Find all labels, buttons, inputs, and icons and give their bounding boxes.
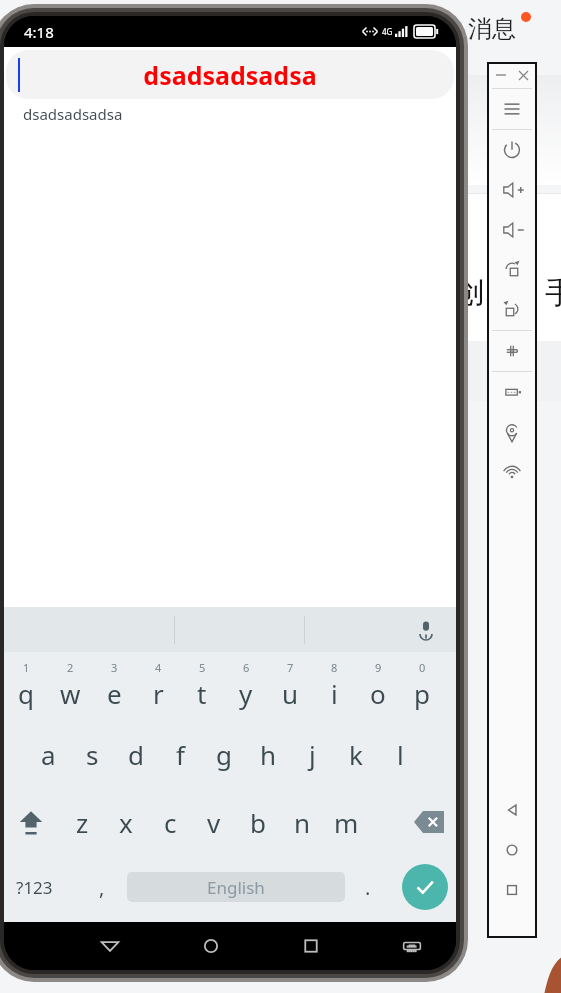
staticText: 手	[545, 274, 561, 312]
button[interactable]: d	[114, 720, 158, 788]
button[interactable]: dsadsadsadsa	[6, 50, 454, 99]
staticText: b	[250, 805, 266, 840]
button[interactable]: h	[246, 720, 290, 788]
button[interactable]: s	[70, 720, 114, 788]
button[interactable]: 1	[4, 652, 48, 720]
button[interactable]: k	[334, 720, 378, 788]
button[interactable]: g	[202, 720, 246, 788]
staticText: English	[207, 876, 265, 899]
staticText: 8	[331, 660, 338, 675]
button[interactable]: Home	[189, 924, 233, 968]
button[interactable]: 4	[136, 652, 180, 720]
button[interactable]: Menu	[487, 89, 537, 129]
staticText: y	[239, 676, 253, 711]
staticText: t	[197, 676, 207, 711]
button[interactable]: Shift	[4, 788, 58, 856]
staticText: 5	[199, 660, 206, 675]
staticText: h	[260, 737, 277, 772]
button[interactable]: .	[348, 856, 388, 918]
button[interactable]: Recents	[487, 870, 537, 910]
button[interactable]: Wi-Fi	[487, 452, 537, 492]
staticText: g	[216, 737, 232, 772]
button[interactable]: 6	[224, 652, 268, 720]
staticText: 4G	[382, 26, 393, 37]
staticText: 0	[419, 660, 426, 675]
button[interactable]: x	[104, 788, 148, 856]
staticText: r	[153, 676, 164, 711]
button[interactable]: Volume down	[487, 210, 537, 250]
staticText: ?123	[16, 876, 53, 899]
button[interactable]: 7	[268, 652, 312, 720]
button[interactable]: Recents	[289, 924, 333, 968]
staticText: dsadsadsadsa	[143, 58, 317, 92]
staticText: 创	[455, 274, 485, 312]
button[interactable]: Voice input	[410, 614, 442, 646]
button[interactable]: Back	[88, 924, 132, 968]
staticText: 4	[155, 660, 162, 675]
staticText: s	[86, 737, 99, 772]
staticText: 3	[111, 660, 118, 675]
staticText: q	[18, 676, 34, 711]
button[interactable]: b	[236, 788, 280, 856]
button[interactable]: 5	[180, 652, 224, 720]
button[interactable]: ?123	[4, 856, 64, 918]
staticText: k	[349, 737, 363, 772]
staticText: ,	[99, 874, 105, 901]
button[interactable]: Volume up	[487, 170, 537, 210]
staticText: 4:18	[24, 22, 54, 42]
button[interactable]: Battery	[487, 372, 537, 412]
button[interactable]: Back	[487, 790, 537, 830]
staticText: x	[119, 805, 133, 840]
staticText: l	[397, 737, 404, 772]
button[interactable]: Screenshot	[487, 331, 537, 371]
staticText: .	[365, 874, 371, 901]
button[interactable]: 8	[312, 652, 356, 720]
button[interactable]: z	[60, 788, 104, 856]
button[interactable]: j	[290, 720, 334, 788]
staticText: p	[414, 676, 430, 711]
staticText: 6	[243, 660, 250, 675]
button[interactable]: Backspace	[402, 788, 456, 856]
staticText: o	[370, 676, 386, 711]
staticText: j	[309, 737, 316, 772]
button[interactable]: Hide keyboard	[390, 924, 434, 968]
staticText: 9	[375, 660, 382, 675]
staticText: 7	[287, 660, 294, 675]
button[interactable]: c	[148, 788, 192, 856]
button[interactable]: m	[324, 788, 368, 856]
staticText: e	[107, 676, 122, 711]
staticText: 1	[23, 660, 30, 675]
staticText: z	[76, 805, 89, 840]
button[interactable]: Rotate left	[487, 290, 537, 330]
button[interactable]: 9	[356, 652, 400, 720]
button[interactable]: 2	[48, 652, 92, 720]
button[interactable]: 0	[400, 652, 444, 720]
button[interactable]: f	[158, 720, 202, 788]
staticText: a	[41, 737, 56, 772]
button[interactable]: Close	[515, 67, 531, 83]
button[interactable]: Power	[487, 130, 537, 170]
staticText: f	[176, 737, 185, 772]
button[interactable]: 3	[92, 652, 136, 720]
button[interactable]: English	[127, 872, 345, 902]
button[interactable]: Rotate right	[487, 250, 537, 290]
button[interactable]: Minimise	[493, 67, 509, 83]
staticText: v	[207, 805, 221, 840]
button[interactable]: n	[280, 788, 324, 856]
staticText: m	[334, 805, 359, 840]
staticText: dsadsadsadsa	[23, 104, 123, 124]
staticText: 消息	[468, 14, 516, 44]
button[interactable]: Home	[487, 830, 537, 870]
button[interactable]: ,	[82, 856, 122, 918]
button[interactable]: Enter	[402, 864, 448, 910]
staticText: u	[282, 676, 299, 711]
staticText: w	[60, 676, 81, 711]
staticText: i	[331, 676, 338, 711]
button[interactable]: a	[26, 720, 70, 788]
button[interactable]: v	[192, 788, 236, 856]
staticText: d	[128, 737, 144, 772]
button[interactable]: Location	[487, 412, 537, 452]
staticText: c	[164, 805, 177, 840]
button[interactable]: l	[378, 720, 422, 788]
staticText: 2	[67, 660, 74, 675]
